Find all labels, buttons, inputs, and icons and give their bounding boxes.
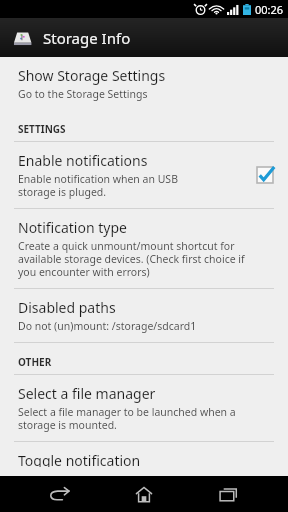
staticText: Toggle notification xyxy=(18,451,141,467)
button[interactable]: Show Storage Settings xyxy=(0,57,288,110)
button[interactable]: Enable notifications toggle xyxy=(254,164,276,186)
staticText: Select a file manager xyxy=(18,384,156,403)
button[interactable]: Enable notifications xyxy=(0,142,288,208)
button[interactable]: Recents xyxy=(204,476,252,512)
staticText: Enable notifications xyxy=(18,151,148,170)
staticText: SETTINGS xyxy=(18,122,66,136)
button[interactable]: Disabled paths xyxy=(0,289,288,342)
button[interactable]: Back xyxy=(36,476,84,512)
staticText: Create a quick unmount/mount shortcut fo… xyxy=(18,239,245,279)
staticText: Select a file manager to be launched whe… xyxy=(18,405,236,432)
staticText: Notification type xyxy=(18,218,127,237)
staticText: Enable notification when an USB storage … xyxy=(18,172,178,199)
button[interactable]: Home xyxy=(120,476,168,512)
button[interactable]: Toggle notification xyxy=(0,442,288,476)
staticText: 00:26 xyxy=(255,2,284,17)
staticText: Go to the Storage Settings xyxy=(18,87,148,101)
staticText: Disabled paths xyxy=(18,298,116,317)
staticText: Storage Info xyxy=(43,28,131,48)
staticText: OTHER xyxy=(18,355,52,369)
staticText: Do not (un)mount: /storage/sdcard1 xyxy=(18,319,197,333)
button[interactable]: Select a file manager xyxy=(0,375,288,441)
button[interactable]: Notification type xyxy=(0,209,288,288)
staticText: Show Storage Settings xyxy=(18,66,166,85)
